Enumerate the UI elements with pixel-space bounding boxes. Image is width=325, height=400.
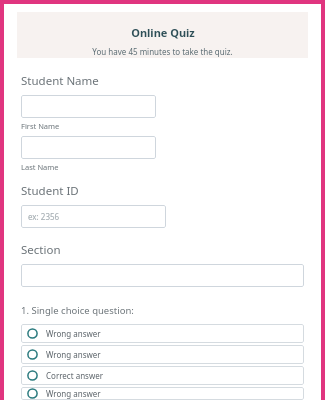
staticText: Section: [21, 242, 61, 258]
button[interactable]: Wrong answer: [21, 387, 304, 400]
button[interactable]: [21, 264, 304, 287]
button[interactable]: Correct answer: [21, 366, 304, 385]
staticText: 1. Single choice question:: [21, 304, 134, 317]
staticText: Correct answer: [46, 370, 104, 381]
button[interactable]: [21, 95, 156, 118]
staticText: Online Quiz: [131, 25, 195, 40]
button[interactable]: Wrong answer: [21, 324, 304, 343]
staticText: Student Name: [21, 73, 99, 89]
staticText: Wrong answer: [46, 328, 101, 339]
button[interactable]: Wrong answer: [21, 345, 304, 364]
staticText: Wrong answer: [46, 349, 101, 360]
staticText: Student ID: [21, 183, 79, 199]
staticText: You have 45 minutes to take the quiz.: [92, 46, 233, 57]
staticText: Last Name: [21, 162, 59, 172]
staticText: ex: 2356: [28, 211, 60, 222]
button[interactable]: [21, 136, 156, 159]
staticText: Wrong answer: [46, 388, 101, 399]
staticText: First Name: [21, 121, 60, 131]
button[interactable]: ex: 2356: [21, 205, 166, 228]
